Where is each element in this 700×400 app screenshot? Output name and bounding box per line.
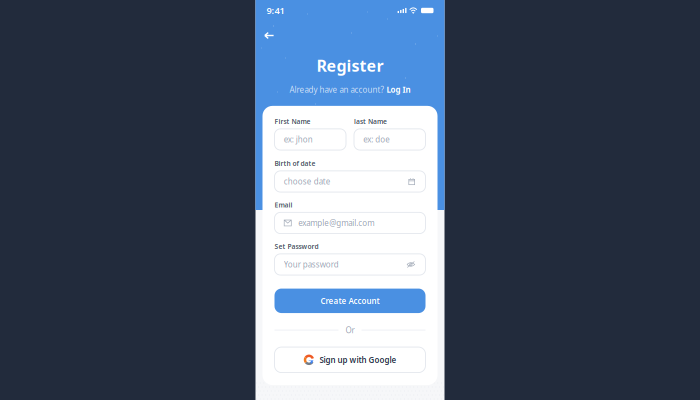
staticText: Set Password xyxy=(274,242,318,251)
staticText: Birth of date xyxy=(274,159,315,168)
staticText: Register xyxy=(316,55,383,76)
staticText: example@gmail.com xyxy=(298,218,374,228)
button[interactable]: Create Account xyxy=(274,289,425,313)
button[interactable]: choose date xyxy=(274,171,425,192)
button[interactable]: Sign up with Google xyxy=(274,347,425,373)
staticText: Create Account xyxy=(320,295,379,306)
staticText: choose date xyxy=(284,176,331,187)
staticText: Or xyxy=(345,325,354,335)
staticText: Already have an account? xyxy=(289,84,383,95)
staticText: last Name xyxy=(354,117,387,126)
button[interactable]: example@gmail.com xyxy=(274,212,425,234)
staticText: Email xyxy=(274,200,292,209)
staticText: Sign up with Google xyxy=(320,354,397,365)
staticText: Your password xyxy=(284,259,339,270)
staticText: ex: jhon xyxy=(284,134,313,145)
staticText: Log In xyxy=(386,84,410,95)
staticText: ex: doe xyxy=(363,134,390,145)
staticText: First Name xyxy=(274,117,310,126)
button[interactable]: Your password xyxy=(274,254,425,275)
button[interactable]: ex: doe xyxy=(354,129,425,150)
button[interactable]: ex: jhon xyxy=(274,129,346,150)
button[interactable]: Log In xyxy=(386,84,410,95)
button[interactable]: Back xyxy=(261,28,277,43)
staticText: 9:41 xyxy=(266,4,284,17)
